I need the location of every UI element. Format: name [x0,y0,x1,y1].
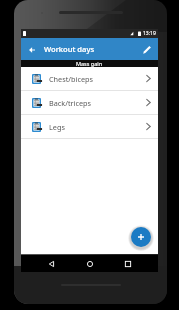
staticText: Legs [49,122,65,132]
button[interactable]: Edit [137,39,158,60]
button[interactable]: Back [21,39,42,60]
button[interactable]: Home [81,255,98,272]
button[interactable]: Back/triceps [21,91,158,114]
staticText: Back/triceps [49,98,92,108]
staticText: Workout days [44,44,95,54]
staticText: Chest/biceps [49,74,94,84]
button[interactable]: Back [43,255,60,272]
button[interactable]: Legs [21,115,158,138]
button[interactable]: Recents [119,255,136,272]
button[interactable]: Chest/biceps [21,67,158,90]
staticText: Mass gain [76,60,103,67]
button[interactable]: Add [131,227,151,247]
staticText: 13:19 [143,30,156,37]
